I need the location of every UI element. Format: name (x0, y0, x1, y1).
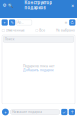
staticText: Конструктор подарков (24, 0, 52, 10)
button[interactable]: Refresh (69, 19, 75, 26)
button[interactable]: Settings (2, 2, 7, 8)
staticText: Все (39, 29, 45, 32)
button[interactable]: List options (64, 19, 68, 25)
staticText: + (3, 20, 6, 25)
staticText: ≡ (64, 20, 67, 24)
button[interactable]: Save (61, 109, 67, 115)
button[interactable]: Отмеченные (2, 29, 25, 32)
staticText: Добавить подарок (23, 68, 54, 72)
staticText: + (4, 109, 7, 115)
staticText: ✎ (11, 20, 14, 25)
staticText: Подарков пока нет (23, 64, 54, 68)
button[interactable]: Add (2, 19, 8, 26)
staticText: Поиск (5, 37, 15, 41)
button[interactable]: Edit (9, 19, 15, 26)
staticText: ↻ (70, 20, 74, 25)
staticText: × (71, 2, 74, 8)
button[interactable]: New gift (2, 109, 9, 115)
staticText: ⚙ (2, 3, 6, 8)
staticText: Не выбрано (56, 29, 75, 32)
button[interactable]: Search (8, 2, 12, 8)
staticText: 🔍 (8, 3, 13, 8)
staticText: ↑ (70, 110, 73, 114)
staticText: Название подарка (12, 110, 42, 114)
staticText: ✓ (62, 110, 66, 114)
staticText: Отмеченные (6, 29, 25, 32)
button[interactable]: Все (35, 29, 45, 32)
button[interactable]: Close (70, 2, 75, 8)
button[interactable]: Send (69, 109, 75, 115)
staticText: Артикул (17, 21, 24, 24)
